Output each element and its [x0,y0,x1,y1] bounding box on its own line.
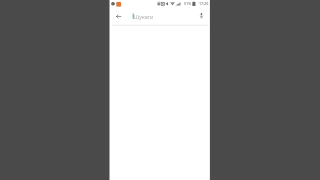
button[interactable]: Voice search [196,9,208,21]
button[interactable]: Search field [126,9,196,21]
staticText: Шукати [134,13,154,20]
staticText: 51% [184,1,192,6]
staticText: 17:20 [199,1,209,6]
button[interactable]: Navigate up [114,9,126,21]
